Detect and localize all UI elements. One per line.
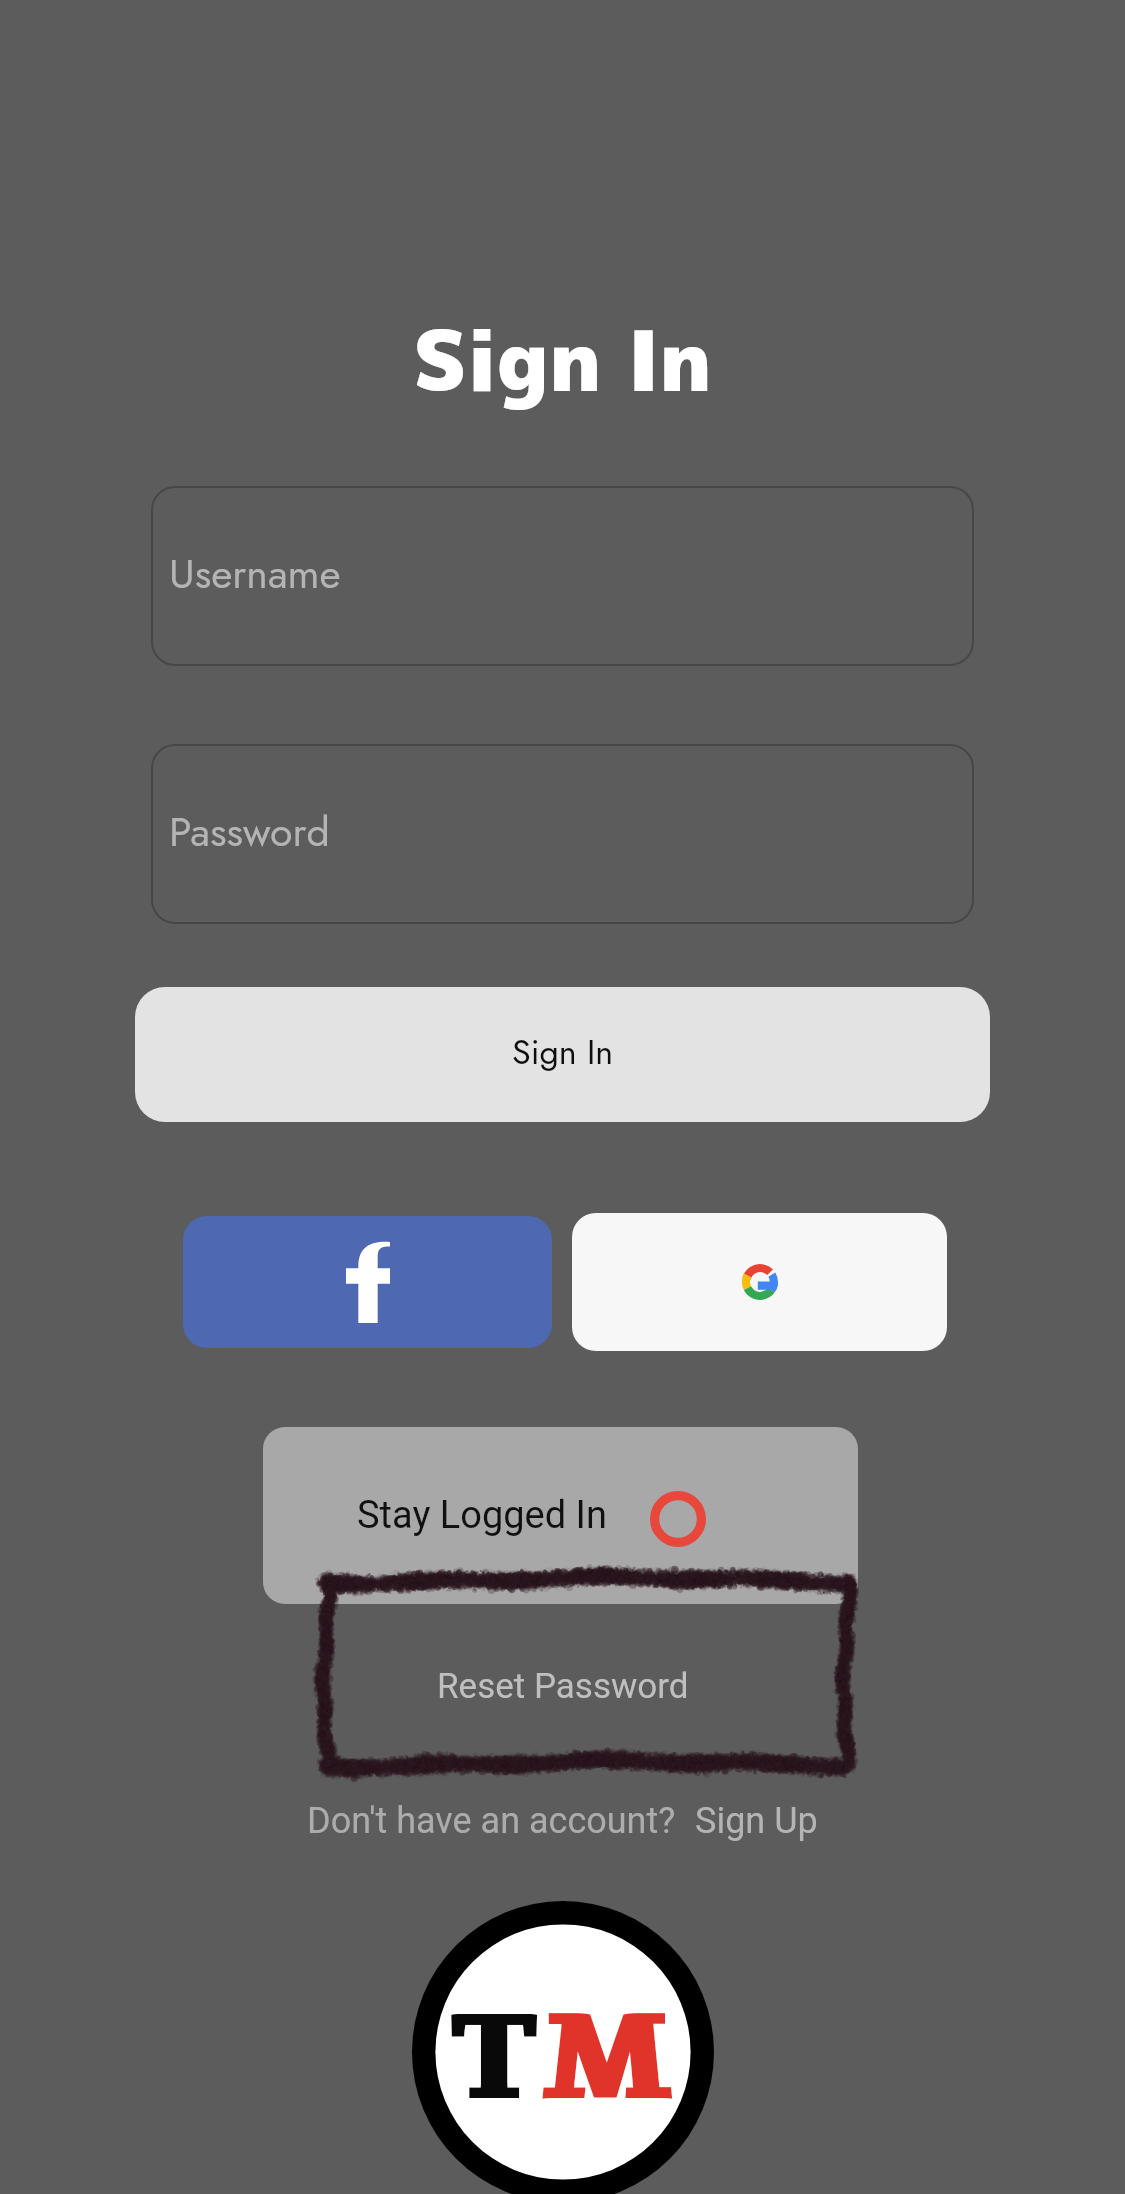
button[interactable]: Stay Logged In (263, 1427, 858, 1604)
staticText: Reset Password (437, 1666, 689, 1707)
button[interactable]: Reset Password (294, 1590, 831, 1783)
staticText: Sign In (0, 303, 1125, 417)
button[interactable]: Sign in with Facebook (183, 1216, 552, 1348)
button[interactable]: Sign in with Google (572, 1213, 947, 1351)
button[interactable]: Sign In (135, 987, 990, 1122)
staticText: Password (169, 802, 330, 861)
staticText: Don't have an account? (307, 1800, 676, 1842)
button[interactable]: Password (151, 744, 974, 924)
staticText: Sign Up (695, 1800, 818, 1842)
staticText: T (450, 1973, 539, 2141)
button[interactable]: Sign Up (695, 1800, 818, 1842)
other: TM logo (412, 1901, 714, 2194)
staticText: Sign In (512, 1028, 614, 1077)
staticText: M (539, 1973, 676, 2141)
staticText: Username (169, 544, 341, 603)
other: Stay logged in toggle (650, 1491, 706, 1547)
staticText: Stay Logged In (357, 1493, 607, 1538)
button[interactable]: Username (151, 486, 974, 666)
